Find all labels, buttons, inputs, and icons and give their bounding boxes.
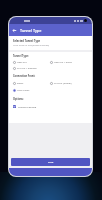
staticText: Http-SNI + Proxy [54, 61, 72, 64]
staticText: TLS-SNI + Payload [17, 67, 37, 70]
staticText: Direct [17, 82, 24, 85]
button[interactable]: TLS-SNI + Payload [13, 65, 50, 71]
staticText: TLS/SNI (tunnel) [54, 82, 72, 85]
button[interactable]: Back [9, 24, 92, 36]
button[interactable]: HTTP Proxy [13, 87, 50, 94]
staticText: Connection Front: [13, 74, 36, 77]
staticText: Custom Payload [18, 105, 37, 108]
button[interactable]: TLS/SNI (tunnel) [50, 80, 88, 87]
staticText: HTTP Proxy [17, 89, 30, 92]
staticText: Tunnel Type: [13, 54, 29, 57]
staticText: Selected Tunnel Type [13, 39, 41, 43]
button[interactable]: Custom Payload [13, 103, 88, 110]
staticText: Tunnel Type [20, 28, 42, 33]
staticText: Options: [13, 97, 24, 100]
button[interactable]: Back [9, 24, 20, 36]
staticText: HTTP Proxy or SSH(tunnel-Payload) [13, 44, 49, 47]
button[interactable]: Direct [13, 80, 50, 87]
button[interactable]: SAVE [11, 158, 90, 166]
staticText: Host-SNI [17, 61, 27, 64]
button[interactable]: Host-SNI [13, 59, 50, 65]
button[interactable]: Http-SNI + Proxy [50, 59, 88, 65]
staticText: SAVE [48, 161, 54, 164]
